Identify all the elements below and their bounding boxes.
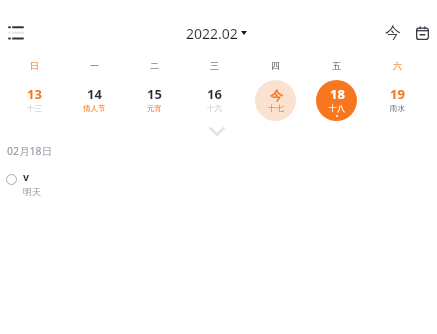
staticText: 13 [27,85,42,103]
staticText: 六 [393,60,402,71]
staticText: 16 [207,85,222,103]
button[interactable]: Expand calendar [202,121,231,142]
staticText: 雨水 [390,104,405,113]
button[interactable]: 19 [367,77,428,121]
staticText: 02月18日 [7,144,53,158]
button[interactable]: 16 [184,77,245,121]
staticText: 日 [30,60,39,71]
staticText: 十八 [329,103,345,113]
staticText: 元宵 [147,104,162,113]
staticText: 五 [332,60,341,71]
staticText: 14 [87,85,102,103]
staticText: 三 [210,60,219,71]
button[interactable]: 今 [381,21,405,45]
staticText: 情人节 [83,104,106,113]
button[interactable]: 15 [124,77,184,121]
staticText: 十七 [268,103,284,113]
button[interactable]: 13 [4,77,64,121]
staticText: 一 [90,60,99,71]
button[interactable]: 2022.02 [186,24,247,43]
button[interactable]: 18 [306,77,367,121]
staticText: 十三 [27,104,42,113]
button[interactable]: 今 [245,77,306,121]
staticText: 十六 [207,104,222,113]
staticText: 15 [147,85,162,103]
staticText: 18 [330,85,345,103]
button[interactable]: 14 [64,77,124,121]
staticText: 明天 [23,186,41,197]
button[interactable]: Agenda list [1,18,30,47]
staticText: 二 [150,60,159,71]
staticText: 19 [390,85,405,103]
staticText: 今 [270,87,283,103]
staticText: 今 [385,23,401,43]
staticText: v [23,170,29,184]
button[interactable]: v [0,168,437,204]
button[interactable]: Calendar [410,21,434,45]
staticText: 2022.02 [186,24,238,43]
staticText: 四 [271,60,280,71]
